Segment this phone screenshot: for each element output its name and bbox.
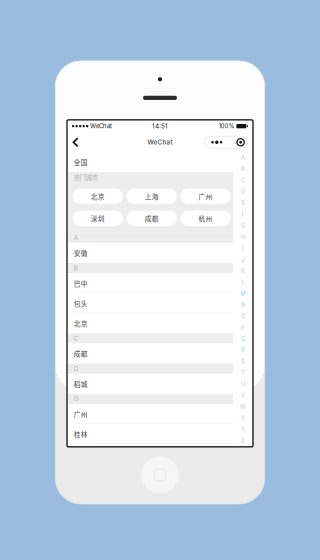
button[interactable]: C: [233, 175, 253, 186]
button[interactable]: S: [233, 356, 253, 367]
staticText: K: [241, 268, 245, 274]
staticText: 巴中: [74, 278, 88, 288]
button[interactable]: 稻城: [67, 374, 233, 394]
button[interactable]: H: [233, 231, 253, 243]
staticText: 广州: [199, 191, 213, 201]
button[interactable]: 北京: [67, 313, 233, 333]
staticText: I: [242, 245, 244, 252]
button[interactable]: Z: [233, 435, 253, 447]
button[interactable]: Back: [67, 133, 83, 152]
staticText: 14:51: [152, 122, 168, 130]
button[interactable]: R: [233, 345, 253, 356]
staticText: B: [241, 166, 245, 172]
button[interactable]: V: [233, 390, 253, 401]
staticText: 成都: [145, 214, 159, 223]
staticText: W: [240, 404, 246, 410]
button[interactable]: 全国: [67, 152, 233, 172]
staticText: 热门城市: [74, 173, 98, 182]
staticText: 北京: [74, 318, 88, 328]
staticText: P: [241, 324, 245, 331]
button[interactable]: J: [233, 254, 253, 265]
button[interactable]: G: [233, 220, 253, 231]
staticText: X: [241, 415, 245, 422]
button[interactable]: K: [233, 265, 253, 277]
staticText: G: [74, 395, 79, 403]
button[interactable]: 巴中: [67, 273, 233, 293]
staticText: A: [241, 154, 245, 161]
staticText: U: [241, 381, 245, 388]
staticText: Z: [241, 438, 245, 444]
staticText: Q: [241, 336, 245, 342]
button[interactable]: P: [233, 322, 253, 333]
button[interactable]: I: [233, 243, 253, 254]
staticText: S: [241, 358, 245, 365]
staticText: L: [241, 279, 244, 286]
staticText: H: [241, 234, 245, 240]
button[interactable]: A: [233, 152, 253, 163]
button[interactable]: U: [233, 379, 253, 390]
button[interactable]: X: [233, 413, 253, 424]
staticText: R: [241, 347, 245, 354]
button[interactable]: D: [233, 186, 253, 197]
button[interactable]: 广州: [180, 188, 231, 204]
staticText: 桂林: [74, 429, 88, 439]
staticText: T: [241, 370, 245, 376]
staticText: 100%: [219, 123, 235, 130]
button[interactable]: 安徽: [67, 243, 233, 263]
button[interactable]: M: [233, 288, 253, 299]
button[interactable]: W: [233, 401, 253, 413]
button[interactable]: 北京: [73, 188, 123, 204]
staticText: 成都: [74, 349, 88, 358]
button[interactable]: F: [233, 209, 253, 220]
button[interactable]: 桂林: [67, 424, 233, 444]
button[interactable]: 成都: [67, 344, 233, 364]
staticText: J: [241, 256, 244, 263]
staticText: 安徽: [74, 248, 88, 258]
staticText: WeChat: [90, 122, 112, 130]
staticText: C: [74, 334, 79, 342]
staticText: A: [74, 234, 78, 242]
button[interactable]: 广州: [67, 404, 233, 424]
staticText: V: [241, 392, 245, 399]
button[interactable]: B: [233, 163, 253, 175]
staticText: 上海: [145, 191, 159, 201]
button[interactable]: N: [233, 299, 253, 311]
staticText: B: [74, 264, 78, 272]
button[interactable]: 成都: [127, 211, 177, 226]
staticText: E: [241, 200, 244, 206]
button[interactable]: L: [233, 277, 253, 288]
staticText: WeChat: [147, 138, 172, 146]
button[interactable]: T: [233, 367, 253, 379]
button[interactable]: 深圳: [73, 211, 123, 226]
staticText: D: [241, 188, 245, 195]
button[interactable]: O: [233, 311, 253, 322]
staticText: 广州: [74, 409, 88, 419]
button[interactable]: Q: [233, 333, 253, 345]
button[interactable]: Y: [233, 424, 253, 435]
staticText: N: [241, 302, 245, 308]
staticText: 杭州: [199, 214, 213, 223]
staticText: 包头: [74, 298, 88, 308]
button[interactable]: 杭州: [180, 211, 231, 226]
staticText: Y: [241, 426, 245, 433]
staticText: 深圳: [91, 214, 105, 223]
staticText: C: [241, 177, 245, 184]
staticText: 全国: [74, 157, 88, 167]
staticText: 稻城: [74, 379, 88, 389]
staticText: 北京: [91, 191, 105, 201]
button[interactable]: E: [233, 197, 253, 209]
button[interactable]: 包头: [67, 293, 233, 313]
button[interactable]: 上海: [127, 188, 177, 204]
staticText: F: [241, 211, 244, 218]
staticText: M: [240, 290, 245, 297]
staticText: G: [241, 222, 245, 229]
staticText: O: [241, 313, 245, 320]
staticText: D: [74, 365, 79, 372]
button[interactable]: More options: [205, 133, 253, 152]
